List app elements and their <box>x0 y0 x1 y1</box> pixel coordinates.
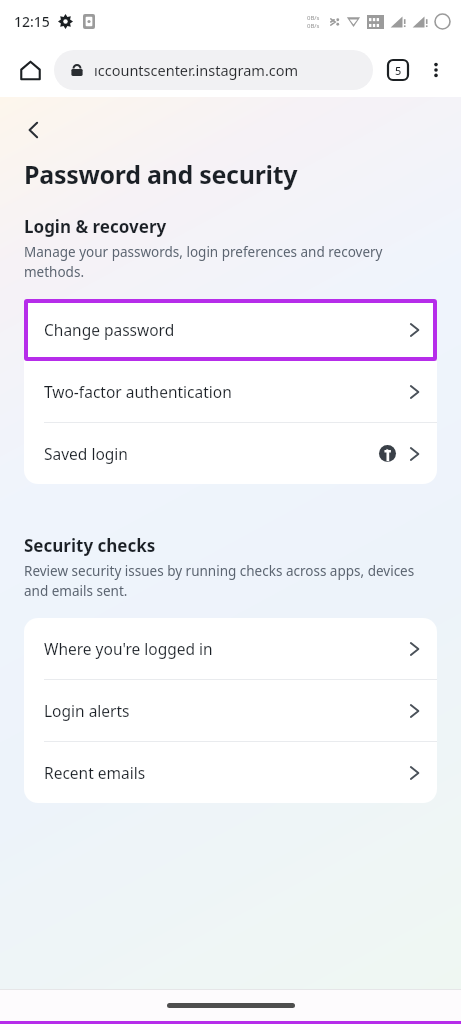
button[interactable]: ıccountscenter.instagram.com <box>54 50 373 90</box>
button[interactable]: Login alerts <box>24 680 437 741</box>
staticText: 5 <box>395 63 402 78</box>
staticText: Recent emails <box>44 762 408 783</box>
button[interactable]: Where you're logged in <box>24 618 437 679</box>
staticText: 12:15 <box>14 12 50 31</box>
staticText: Two-factor authentication <box>44 381 408 402</box>
button[interactable]: Recent emails <box>24 742 437 803</box>
staticText: Where you're logged in <box>44 638 408 659</box>
staticText: 0B/s <box>307 14 320 22</box>
staticText: Saved login <box>44 443 379 464</box>
staticText: 0B/s <box>307 22 320 30</box>
staticText: Security checks <box>24 534 156 557</box>
staticText: Login alerts <box>44 700 408 721</box>
button[interactable]: Change password <box>24 299 437 360</box>
button[interactable]: Tabs: 5 open <box>379 51 417 89</box>
staticText: Password and security <box>24 157 298 191</box>
button[interactable]: Two-factor authentication <box>24 361 437 422</box>
staticText: Login & recovery <box>24 215 167 238</box>
button[interactable]: Back <box>14 111 52 149</box>
button[interactable]: Home <box>10 50 50 90</box>
staticText: Review security issues by running checks… <box>24 562 437 600</box>
staticText: Manage your passwords, login preferences… <box>24 243 437 281</box>
staticText: ıccountscenter.instagram.com <box>94 60 299 80</box>
staticText: Change password <box>44 319 408 340</box>
button[interactable]: Saved login <box>24 423 437 484</box>
button[interactable]: More options <box>417 51 455 89</box>
